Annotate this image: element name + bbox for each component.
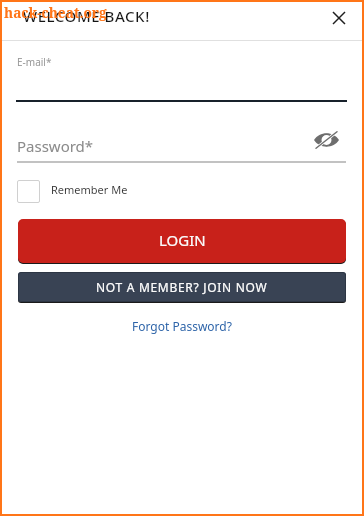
button[interactable]: Close — [326, 5, 351, 30]
staticText: Remember Me — [51, 182, 128, 197]
button[interactable]: Forgot Password? — [128, 316, 236, 336]
button[interactable]: NOT A MEMBER? JOIN NOW — [18, 272, 346, 302]
button[interactable]: LOGIN — [18, 219, 346, 263]
staticText: Forgot Password? — [132, 318, 232, 334]
staticText: WELCOME BACK! — [23, 6, 150, 26]
staticText: LOGIN — [159, 230, 206, 250]
staticText: NOT A MEMBER? JOIN NOW — [96, 279, 268, 295]
staticText: hack-cheat.org — [4, 3, 107, 22]
button[interactable]: Show password — [310, 127, 342, 153]
button[interactable]: Remember Me — [17, 179, 128, 203]
staticText: E-mail* — [17, 55, 52, 69]
staticText: Password* — [17, 136, 94, 156]
